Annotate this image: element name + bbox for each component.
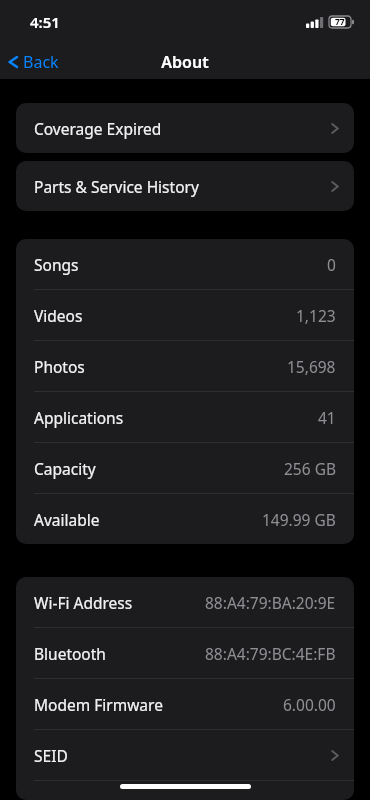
button[interactable]: Wi-Fi Address	[16, 577, 354, 627]
button[interactable]: Coverage Expired	[16, 103, 354, 153]
button[interactable]: Photos	[16, 341, 354, 391]
staticText: 88:A4:79:BC:4E:FB	[205, 643, 336, 664]
button[interactable]: Applications	[16, 392, 354, 442]
staticText: SEID	[34, 745, 68, 766]
staticText: 0	[327, 254, 336, 275]
staticText: Photos	[34, 356, 85, 377]
button[interactable]: Songs	[16, 239, 354, 289]
button[interactable]: Modem Firmware	[16, 679, 354, 729]
staticText: 6.00.00	[283, 694, 336, 715]
staticText: 41	[318, 407, 336, 428]
staticText: Videos	[34, 305, 83, 326]
button[interactable]: Back	[0, 47, 71, 77]
other: Home indicator	[120, 784, 251, 789]
staticText: 4:51	[30, 12, 60, 32]
staticText: Back	[23, 51, 59, 73]
staticText: 15,698	[287, 356, 336, 377]
staticText: 1,123	[296, 305, 336, 326]
staticText: Parts & Service History	[34, 176, 199, 197]
staticText: 256 GB	[284, 458, 336, 479]
staticText: 88:A4:79:BA:20:9E	[205, 592, 336, 613]
staticText: 149.99 GB	[262, 509, 336, 530]
button[interactable]: Parts & Service History	[16, 161, 354, 211]
staticText: Modem Firmware	[34, 694, 163, 715]
staticText: Wi-Fi Address	[34, 592, 133, 613]
staticText: 77	[335, 16, 345, 28]
staticText: Bluetooth	[34, 643, 106, 664]
staticText: Applications	[34, 407, 124, 428]
button[interactable]: Bluetooth	[16, 628, 354, 678]
staticText: Songs	[34, 254, 79, 275]
staticText: About	[161, 51, 209, 73]
button[interactable]: Videos	[16, 290, 354, 340]
staticText: Capacity	[34, 458, 96, 479]
button[interactable]: Capacity	[16, 443, 354, 493]
staticText: Available	[34, 509, 100, 530]
staticText: Coverage Expired	[34, 118, 162, 139]
button[interactable]: Available	[16, 494, 354, 544]
button[interactable]: SEID	[16, 730, 354, 780]
